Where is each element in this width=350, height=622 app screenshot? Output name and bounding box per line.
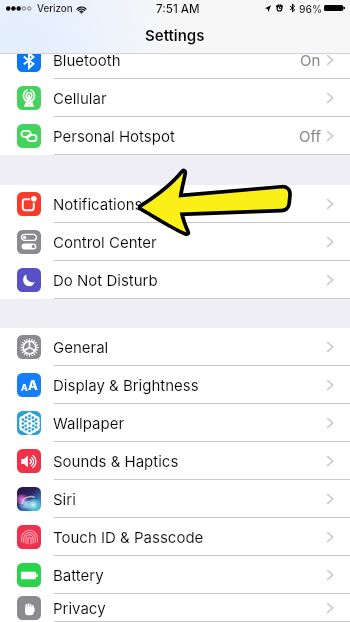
- button[interactable]: Control Center: [0, 223, 350, 261]
- button[interactable]: General: [0, 328, 350, 366]
- button[interactable]: Siri: [0, 480, 350, 518]
- staticText: A: [21, 382, 28, 393]
- staticText: Touch ID & Passcode: [53, 528, 204, 546]
- staticText: Privacy: [53, 599, 106, 617]
- button[interactable]: Touch ID & Passcode: [0, 518, 350, 556]
- button[interactable]: Notifications: [0, 185, 350, 223]
- button[interactable]: Cellular: [0, 79, 350, 117]
- staticText: Do Not Disturb: [53, 271, 158, 289]
- button[interactable]: A: [0, 366, 350, 404]
- button[interactable]: Personal Hotspot: [0, 117, 350, 155]
- staticText: Siri: [53, 490, 76, 508]
- staticText: On: [300, 51, 321, 69]
- staticText: Notifications: [53, 195, 143, 213]
- staticText: General: [53, 338, 109, 356]
- staticText: Battery: [53, 566, 104, 584]
- staticText: Bluetooth: [53, 51, 121, 69]
- button[interactable]: Battery: [0, 556, 350, 594]
- button[interactable]: Wallpaper: [0, 404, 350, 442]
- staticText: Personal Hotspot: [53, 127, 175, 145]
- staticText: Control Center: [53, 233, 157, 251]
- button[interactable]: Privacy: [0, 594, 350, 622]
- staticText: Display & Brightness: [53, 376, 199, 394]
- staticText: Verizon: [37, 3, 73, 15]
- button[interactable]: Bluetooth: [0, 41, 350, 79]
- staticText: Off: [299, 127, 321, 145]
- staticText: 96%: [299, 3, 323, 15]
- staticText: Cellular: [53, 89, 107, 107]
- button[interactable]: Do Not Disturb: [0, 261, 350, 299]
- staticText: 7:51 AM: [156, 2, 200, 16]
- staticText: A: [28, 377, 38, 393]
- staticText: Wallpaper: [53, 414, 125, 432]
- staticText: Sounds & Haptics: [53, 452, 179, 470]
- button[interactable]: Sounds & Haptics: [0, 442, 350, 480]
- staticText: Settings: [145, 26, 205, 44]
